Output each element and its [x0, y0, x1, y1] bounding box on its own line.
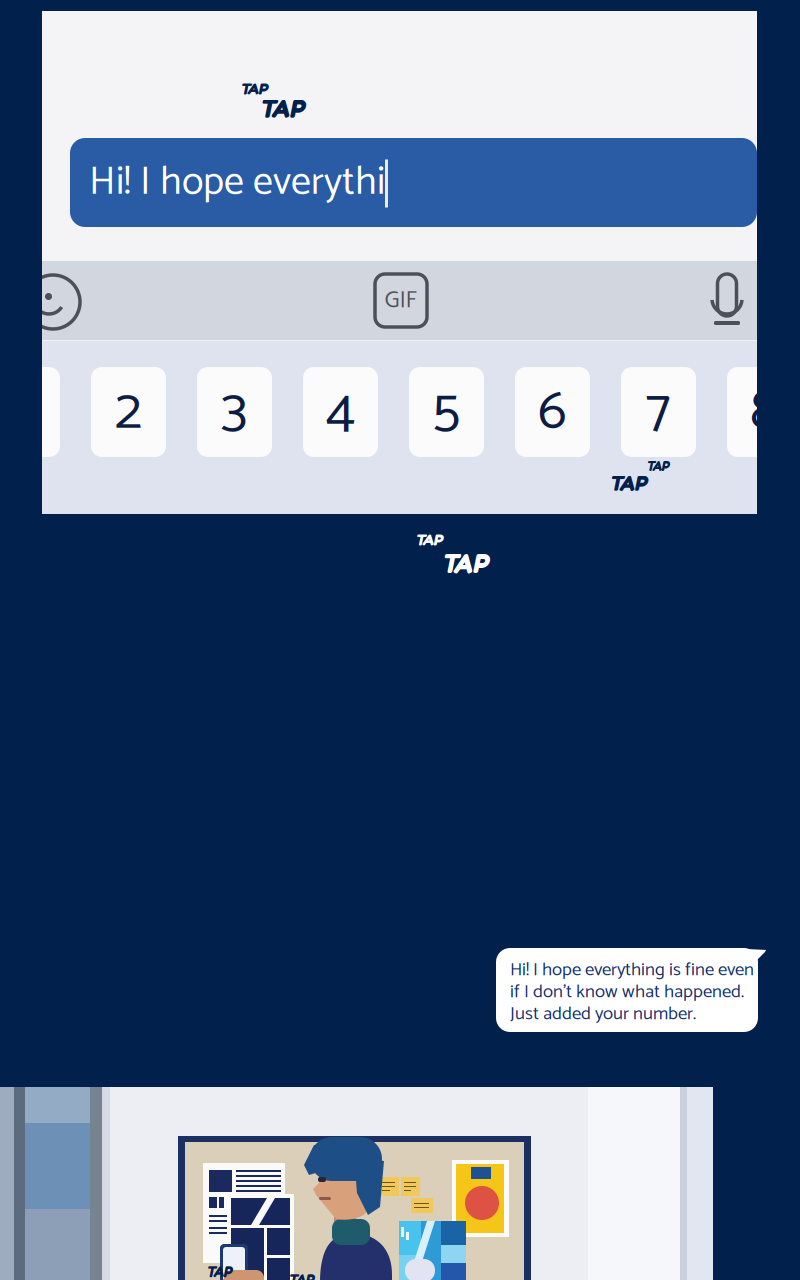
button[interactable]: 5 [409, 367, 484, 457]
button[interactable]: GIF [375, 274, 427, 327]
button[interactable]: 4 [303, 367, 378, 457]
staticText: TAP [415, 530, 443, 549]
staticText: TAP [259, 93, 304, 124]
button[interactable]: 6 [515, 367, 590, 457]
button[interactable]: Emoji keyboard [25, 274, 81, 330]
button[interactable]: 1 [0, 367, 60, 457]
staticText: GIF [384, 281, 417, 320]
staticText: Hi! I hope everything is fine even if I … [510, 959, 754, 1025]
staticText: 8 [750, 366, 779, 458]
staticText: TAP [646, 458, 669, 474]
staticText: TAP [288, 1271, 314, 1280]
staticText: 4 [326, 366, 355, 458]
staticText: TAP [240, 79, 268, 98]
staticText: Hi! I hope everythi [89, 150, 385, 215]
button[interactable]: 2 [91, 367, 166, 457]
staticText: TAP [609, 470, 647, 496]
button[interactable]: Dictate [709, 274, 745, 328]
staticText: 5 [432, 366, 460, 458]
staticText: 2 [115, 366, 142, 458]
button[interactable]: 8 [727, 367, 800, 457]
staticText: TAP [441, 547, 488, 579]
staticText: 3 [221, 366, 247, 458]
button[interactable]: 3 [197, 367, 272, 457]
staticText: 6 [538, 366, 567, 458]
staticText: TAP [206, 1263, 232, 1280]
button[interactable]: 7 [621, 367, 696, 457]
staticText: 7 [646, 366, 671, 458]
